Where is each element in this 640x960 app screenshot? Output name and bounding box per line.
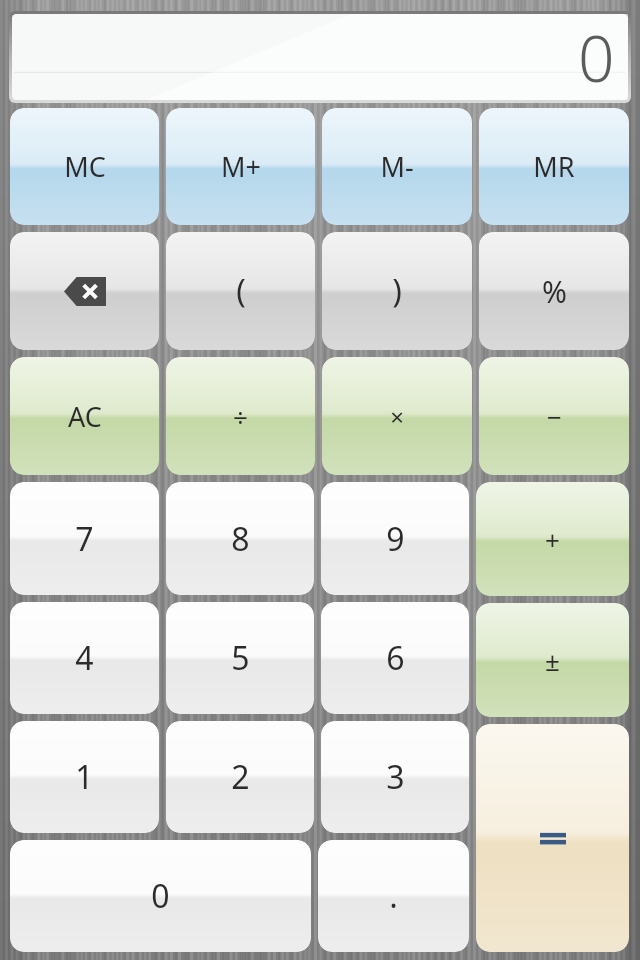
staticText: ( xyxy=(236,269,246,313)
button[interactable]: 7 xyxy=(10,482,159,595)
staticText: + xyxy=(545,522,560,557)
button[interactable]: ) xyxy=(322,232,472,350)
button[interactable]: MR xyxy=(479,108,629,225)
button[interactable]: 0 xyxy=(10,840,311,952)
button[interactable]: 2 xyxy=(166,721,314,833)
staticText: 1 xyxy=(75,755,94,799)
staticText: 7 xyxy=(75,517,94,561)
button[interactable]: ( xyxy=(166,232,315,350)
button[interactable]: 5 xyxy=(166,602,314,714)
staticText: MC xyxy=(64,148,106,185)
button[interactable]: ÷ xyxy=(166,357,315,475)
button[interactable]: 4 xyxy=(10,602,159,714)
staticText: ) xyxy=(392,269,402,313)
staticText: MR xyxy=(533,148,575,185)
button[interactable]: Equals xyxy=(476,724,629,952)
button[interactable]: + xyxy=(476,482,629,596)
button[interactable]: − xyxy=(479,357,629,475)
button[interactable]: M- xyxy=(322,108,472,225)
button[interactable]: 9 xyxy=(321,482,469,595)
staticText: M- xyxy=(380,148,414,185)
staticText: 2 xyxy=(231,755,250,799)
staticText: × xyxy=(390,400,404,433)
staticText: 4 xyxy=(75,636,94,680)
button[interactable]: MC xyxy=(10,108,159,225)
staticText: ± xyxy=(545,643,560,678)
staticText: ÷ xyxy=(233,399,248,434)
button[interactable]: 8 xyxy=(166,482,314,595)
staticText: 6 xyxy=(386,636,405,680)
button[interactable]: × xyxy=(322,357,472,475)
staticText: 0 xyxy=(578,14,615,101)
staticText: − xyxy=(547,399,562,434)
button[interactable]: 1 xyxy=(10,721,159,833)
button[interactable]: 3 xyxy=(321,721,469,833)
button[interactable]: ± xyxy=(476,603,629,717)
staticText: 0 xyxy=(151,874,170,918)
staticText: 9 xyxy=(386,517,405,561)
staticText: . xyxy=(389,874,398,918)
staticText: M+ xyxy=(221,148,261,185)
button[interactable]: M+ xyxy=(166,108,315,225)
button[interactable]: AC xyxy=(10,357,159,475)
button[interactable]: . xyxy=(318,840,469,952)
staticText: 8 xyxy=(231,517,250,561)
button[interactable]: Backspace xyxy=(10,232,159,350)
staticText: 3 xyxy=(386,755,405,799)
button[interactable]: % xyxy=(479,232,629,350)
staticText: 5 xyxy=(231,636,250,680)
staticText: AC xyxy=(68,398,102,435)
button[interactable]: 6 xyxy=(321,602,469,714)
staticText: % xyxy=(542,271,567,312)
